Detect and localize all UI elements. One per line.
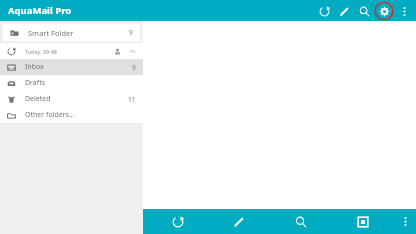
button[interactable]: Search <box>354 1 374 21</box>
button[interactable]: Refresh <box>147 209 208 234</box>
button[interactable]: Inbox <box>0 59 143 75</box>
staticText: 9 <box>129 28 133 37</box>
staticText: 11 <box>128 95 136 104</box>
staticText: Today, 09:48 <box>25 48 58 55</box>
staticText: Other folders... <box>25 110 75 120</box>
button[interactable]: Settings <box>374 1 394 21</box>
button[interactable]: Select <box>332 209 394 234</box>
staticText: Inbox <box>25 62 44 72</box>
button[interactable]: Search <box>270 209 332 234</box>
button[interactable]: More options <box>394 1 414 21</box>
button[interactable]: More options <box>394 209 416 234</box>
button[interactable]: Refresh <box>314 1 334 21</box>
button[interactable]: Smart Folder <box>3 24 140 41</box>
button[interactable]: Deleted <box>0 91 143 107</box>
button[interactable]: Drafts <box>0 75 143 91</box>
staticText: 9 <box>132 63 136 72</box>
staticText: Smart Folder <box>28 28 74 38</box>
staticText: Drafts <box>25 78 46 88</box>
button[interactable]: Compose <box>334 1 354 21</box>
button[interactable]: Compose <box>208 209 270 234</box>
button[interactable]: Today, 09:48 <box>0 43 143 59</box>
staticText: AquaMail Pro <box>8 4 72 17</box>
button[interactable]: Other folders... <box>0 107 143 123</box>
staticText: Deleted <box>25 94 51 104</box>
